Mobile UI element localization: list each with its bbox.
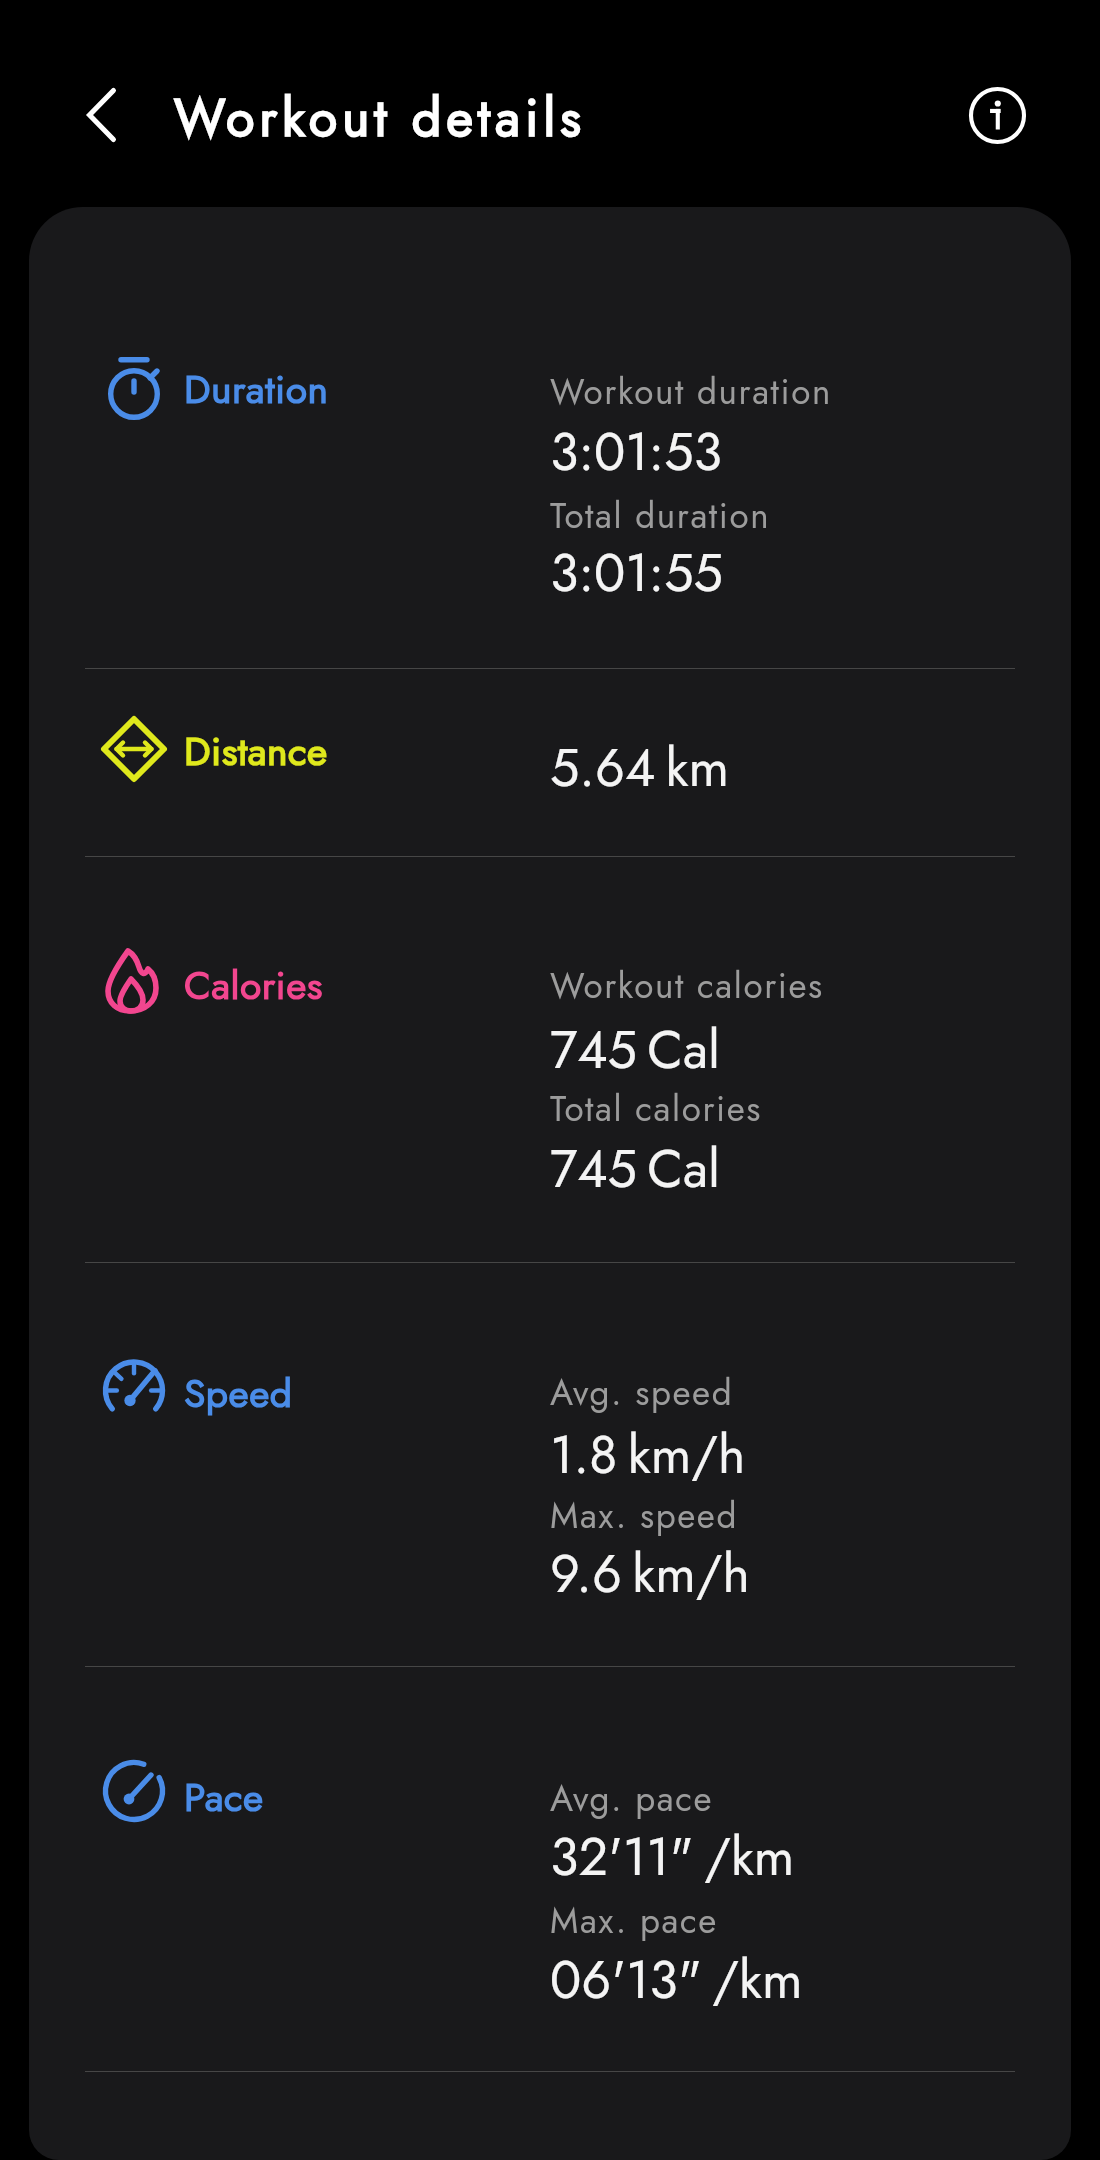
staticText: Avg. speed: [550, 1368, 734, 1419]
staticText: Total calories: [550, 1084, 763, 1135]
button[interactable]: Speed: [29, 1263, 1071, 1666]
button[interactable]: Duration: [29, 207, 1071, 668]
staticText: Distance: [184, 723, 328, 779]
staticText: Avg. pace: [550, 1774, 714, 1825]
button[interactable]: Navigate up: [72, 86, 130, 144]
staticText: 32'11" /km: [550, 1819, 795, 1894]
staticText: Max. pace: [550, 1896, 718, 1947]
staticText: Max. speed: [550, 1491, 738, 1542]
staticText: Workout details: [174, 80, 586, 155]
staticText: 3:01:53: [550, 414, 722, 489]
staticText: 9.6 km/h: [550, 1536, 750, 1611]
staticText: 06'13" /km: [550, 1942, 803, 2017]
staticText: Calories: [184, 957, 324, 1013]
staticText: 3:01:55: [550, 535, 723, 610]
staticText: 745 Cal: [550, 1131, 720, 1206]
staticText: Total duration: [550, 491, 771, 542]
staticText: Workout duration: [550, 367, 832, 418]
staticText: Pace: [184, 1769, 264, 1825]
staticText: Duration: [184, 361, 329, 417]
button[interactable]: Calories: [29, 857, 1071, 1262]
button[interactable]: Information: [962, 80, 1032, 150]
staticText: Workout calories: [550, 961, 824, 1012]
staticText: 1.8 km/h: [550, 1417, 746, 1492]
button[interactable]: Pace: [29, 1667, 1071, 2071]
staticText: 745 Cal: [550, 1012, 720, 1087]
button[interactable]: Distance: [29, 669, 1071, 856]
staticText: 5.64 km: [550, 730, 730, 805]
staticText: Speed: [184, 1365, 293, 1421]
